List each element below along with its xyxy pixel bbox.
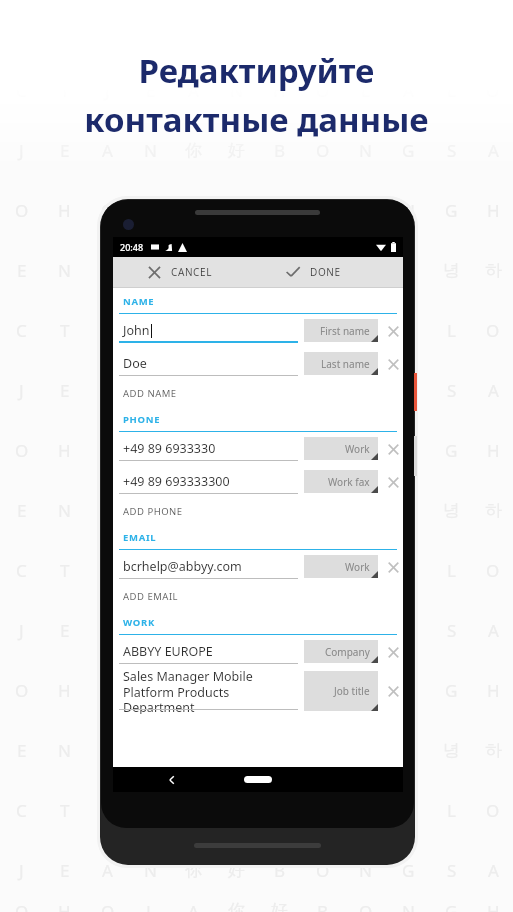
staticText: N	[359, 139, 372, 162]
staticText: L	[447, 799, 456, 822]
button[interactable]: bcrhelp@abbyy.com	[113, 550, 403, 583]
staticText: J	[19, 379, 24, 402]
staticText: G	[402, 859, 415, 882]
staticText: B	[317, 199, 329, 222]
staticText: A	[488, 139, 499, 162]
staticText: O	[486, 319, 500, 342]
staticText: G	[445, 199, 458, 222]
staticText: H	[273, 79, 286, 102]
staticText: 你	[228, 200, 245, 221]
button[interactable]: Remove Company	[383, 641, 403, 663]
button[interactable]: ADD NAME	[113, 380, 403, 406]
staticText: J	[105, 799, 110, 822]
staticText: L	[146, 679, 155, 702]
button[interactable]: Remove Work	[383, 556, 403, 578]
button[interactable]: Remove Last name	[383, 353, 403, 375]
button[interactable]: +49 89 6933330	[113, 432, 403, 465]
button[interactable]: First name	[304, 319, 378, 342]
button[interactable]: ABBYY EUROPE	[113, 635, 403, 668]
staticText: NAME	[123, 295, 155, 308]
button[interactable]: CANCEL	[113, 257, 258, 287]
staticText: N	[402, 900, 415, 912]
staticText: E	[17, 739, 27, 762]
staticText: L	[146, 439, 155, 462]
button[interactable]: Home	[244, 776, 272, 783]
staticText: 녕	[443, 740, 460, 761]
staticText: +49 89 6933330	[123, 440, 216, 457]
staticText: G	[445, 439, 458, 462]
staticText: O	[316, 139, 330, 162]
staticText: N	[144, 619, 157, 642]
staticText: N	[58, 739, 71, 762]
button[interactable]: Job title	[304, 671, 378, 711]
staticText: A	[102, 859, 113, 882]
staticText: A	[317, 259, 328, 282]
staticText: 你	[228, 440, 245, 461]
staticText: 你	[185, 140, 202, 161]
button[interactable]: Remove First name	[383, 320, 403, 342]
staticText: N	[144, 859, 157, 882]
button[interactable]: Last name	[304, 352, 378, 375]
staticText: B	[317, 439, 329, 462]
staticText: O	[316, 319, 330, 342]
staticText: J	[19, 859, 24, 882]
staticText: 안	[400, 740, 417, 761]
staticText: G	[402, 139, 415, 162]
staticText: 하	[485, 260, 502, 281]
staticText: N	[359, 859, 372, 882]
staticText: 好	[271, 200, 288, 221]
staticText: ADD PHONE	[123, 505, 183, 518]
button[interactable]: Work fax	[304, 470, 378, 493]
staticText: H	[273, 319, 286, 342]
staticText: A	[188, 439, 199, 462]
button[interactable]: Back	[163, 771, 181, 789]
button[interactable]: Remove Job title	[383, 680, 403, 702]
staticText: H	[58, 900, 71, 912]
staticText: A	[488, 619, 499, 642]
button[interactable]: ADD EMAIL	[113, 583, 403, 609]
staticText: Work fax	[328, 475, 370, 489]
staticText: E	[60, 379, 70, 402]
staticText: N	[101, 739, 114, 762]
staticText: N	[402, 199, 415, 222]
button[interactable]: Doe	[113, 347, 403, 380]
button[interactable]: Remove Work	[383, 438, 403, 460]
button[interactable]: ADD PHONE	[113, 498, 403, 524]
button[interactable]: Company	[304, 640, 378, 663]
button[interactable]: Work	[304, 555, 378, 578]
staticText: 你	[228, 900, 245, 912]
staticText: N	[144, 379, 157, 402]
button[interactable]: DONE	[258, 257, 403, 287]
staticText: L	[447, 319, 456, 342]
staticText: O	[101, 900, 115, 912]
staticText: 안	[400, 500, 417, 521]
button[interactable]: John	[113, 314, 403, 347]
button[interactable]: Work	[304, 437, 378, 460]
staticText: 好	[228, 620, 245, 641]
button[interactable]: +49 89 693333300	[113, 465, 403, 498]
button[interactable]: Remove Work fax	[383, 471, 403, 493]
staticText: H	[58, 679, 71, 702]
staticText: O	[316, 559, 330, 582]
staticText: N	[402, 679, 415, 702]
button[interactable]: Sales Manager Mobile Platform Products D…	[113, 668, 403, 714]
